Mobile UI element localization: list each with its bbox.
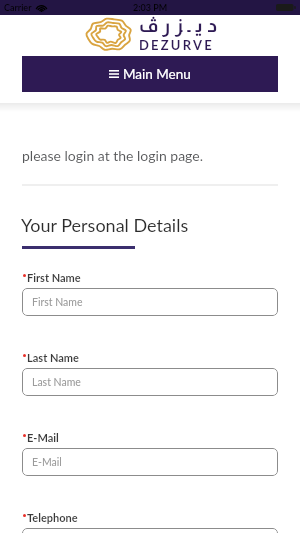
- staticText: Last Name: [27, 351, 79, 364]
- staticText: DEZURVE: [139, 37, 214, 53]
- staticText: Telephone: [27, 511, 78, 524]
- staticText: 2:03 PM: [133, 2, 168, 13]
- staticText: Carrier: [4, 2, 32, 13]
- staticText: Last Name: [32, 376, 81, 389]
- button[interactable]: Main Menu: [22, 56, 278, 92]
- button[interactable]: E-Mail: [22, 448, 278, 476]
- staticText: E-Mail: [27, 431, 59, 444]
- staticText: First Name: [27, 271, 81, 284]
- button[interactable]: First Name: [22, 288, 278, 316]
- staticText: please login at the login page.: [22, 147, 203, 164]
- staticText: First Name: [32, 296, 83, 309]
- staticText: ديـزرڤ: [139, 15, 223, 36]
- staticText: Main Menu: [123, 66, 191, 82]
- button[interactable]: Last Name: [22, 368, 278, 396]
- staticText: E-Mail: [32, 456, 62, 469]
- button[interactable]: Telephone: [22, 528, 278, 533]
- staticText: Your Personal Details: [21, 214, 189, 236]
